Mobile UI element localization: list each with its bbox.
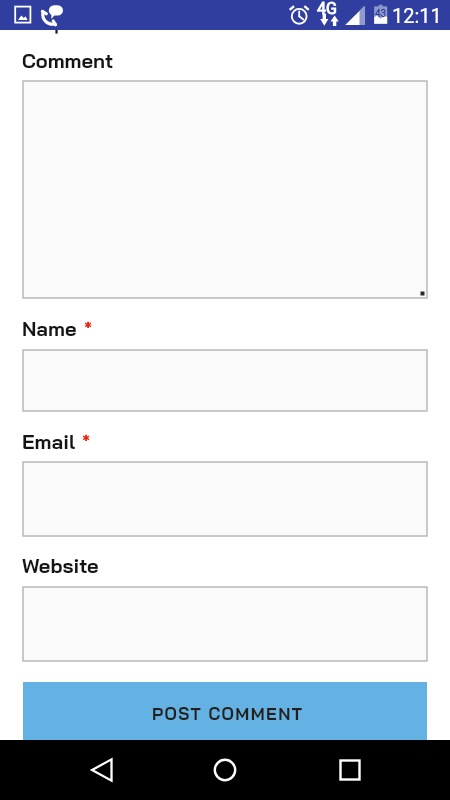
button[interactable]: Recent apps [311, 740, 389, 800]
button[interactable] [23, 462, 427, 536]
staticText: 12:11 [392, 4, 442, 27]
staticText: Website [22, 553, 99, 578]
staticText: Email [22, 429, 75, 454]
button[interactable]: POST COMMENT [23, 682, 427, 740]
staticText: 43 [375, 8, 387, 20]
staticText: POST COMMENT [152, 703, 304, 724]
button[interactable]: Home [186, 740, 263, 800]
staticText: 4G [317, 0, 337, 18]
staticText: * [84, 317, 93, 340]
staticText: Comment [22, 48, 114, 73]
staticText: * [82, 430, 91, 453]
button[interactable] [23, 587, 427, 661]
button[interactable] [23, 81, 427, 298]
button[interactable]: Back [64, 740, 142, 800]
button[interactable] [23, 350, 427, 411]
staticText: Name [22, 316, 77, 341]
